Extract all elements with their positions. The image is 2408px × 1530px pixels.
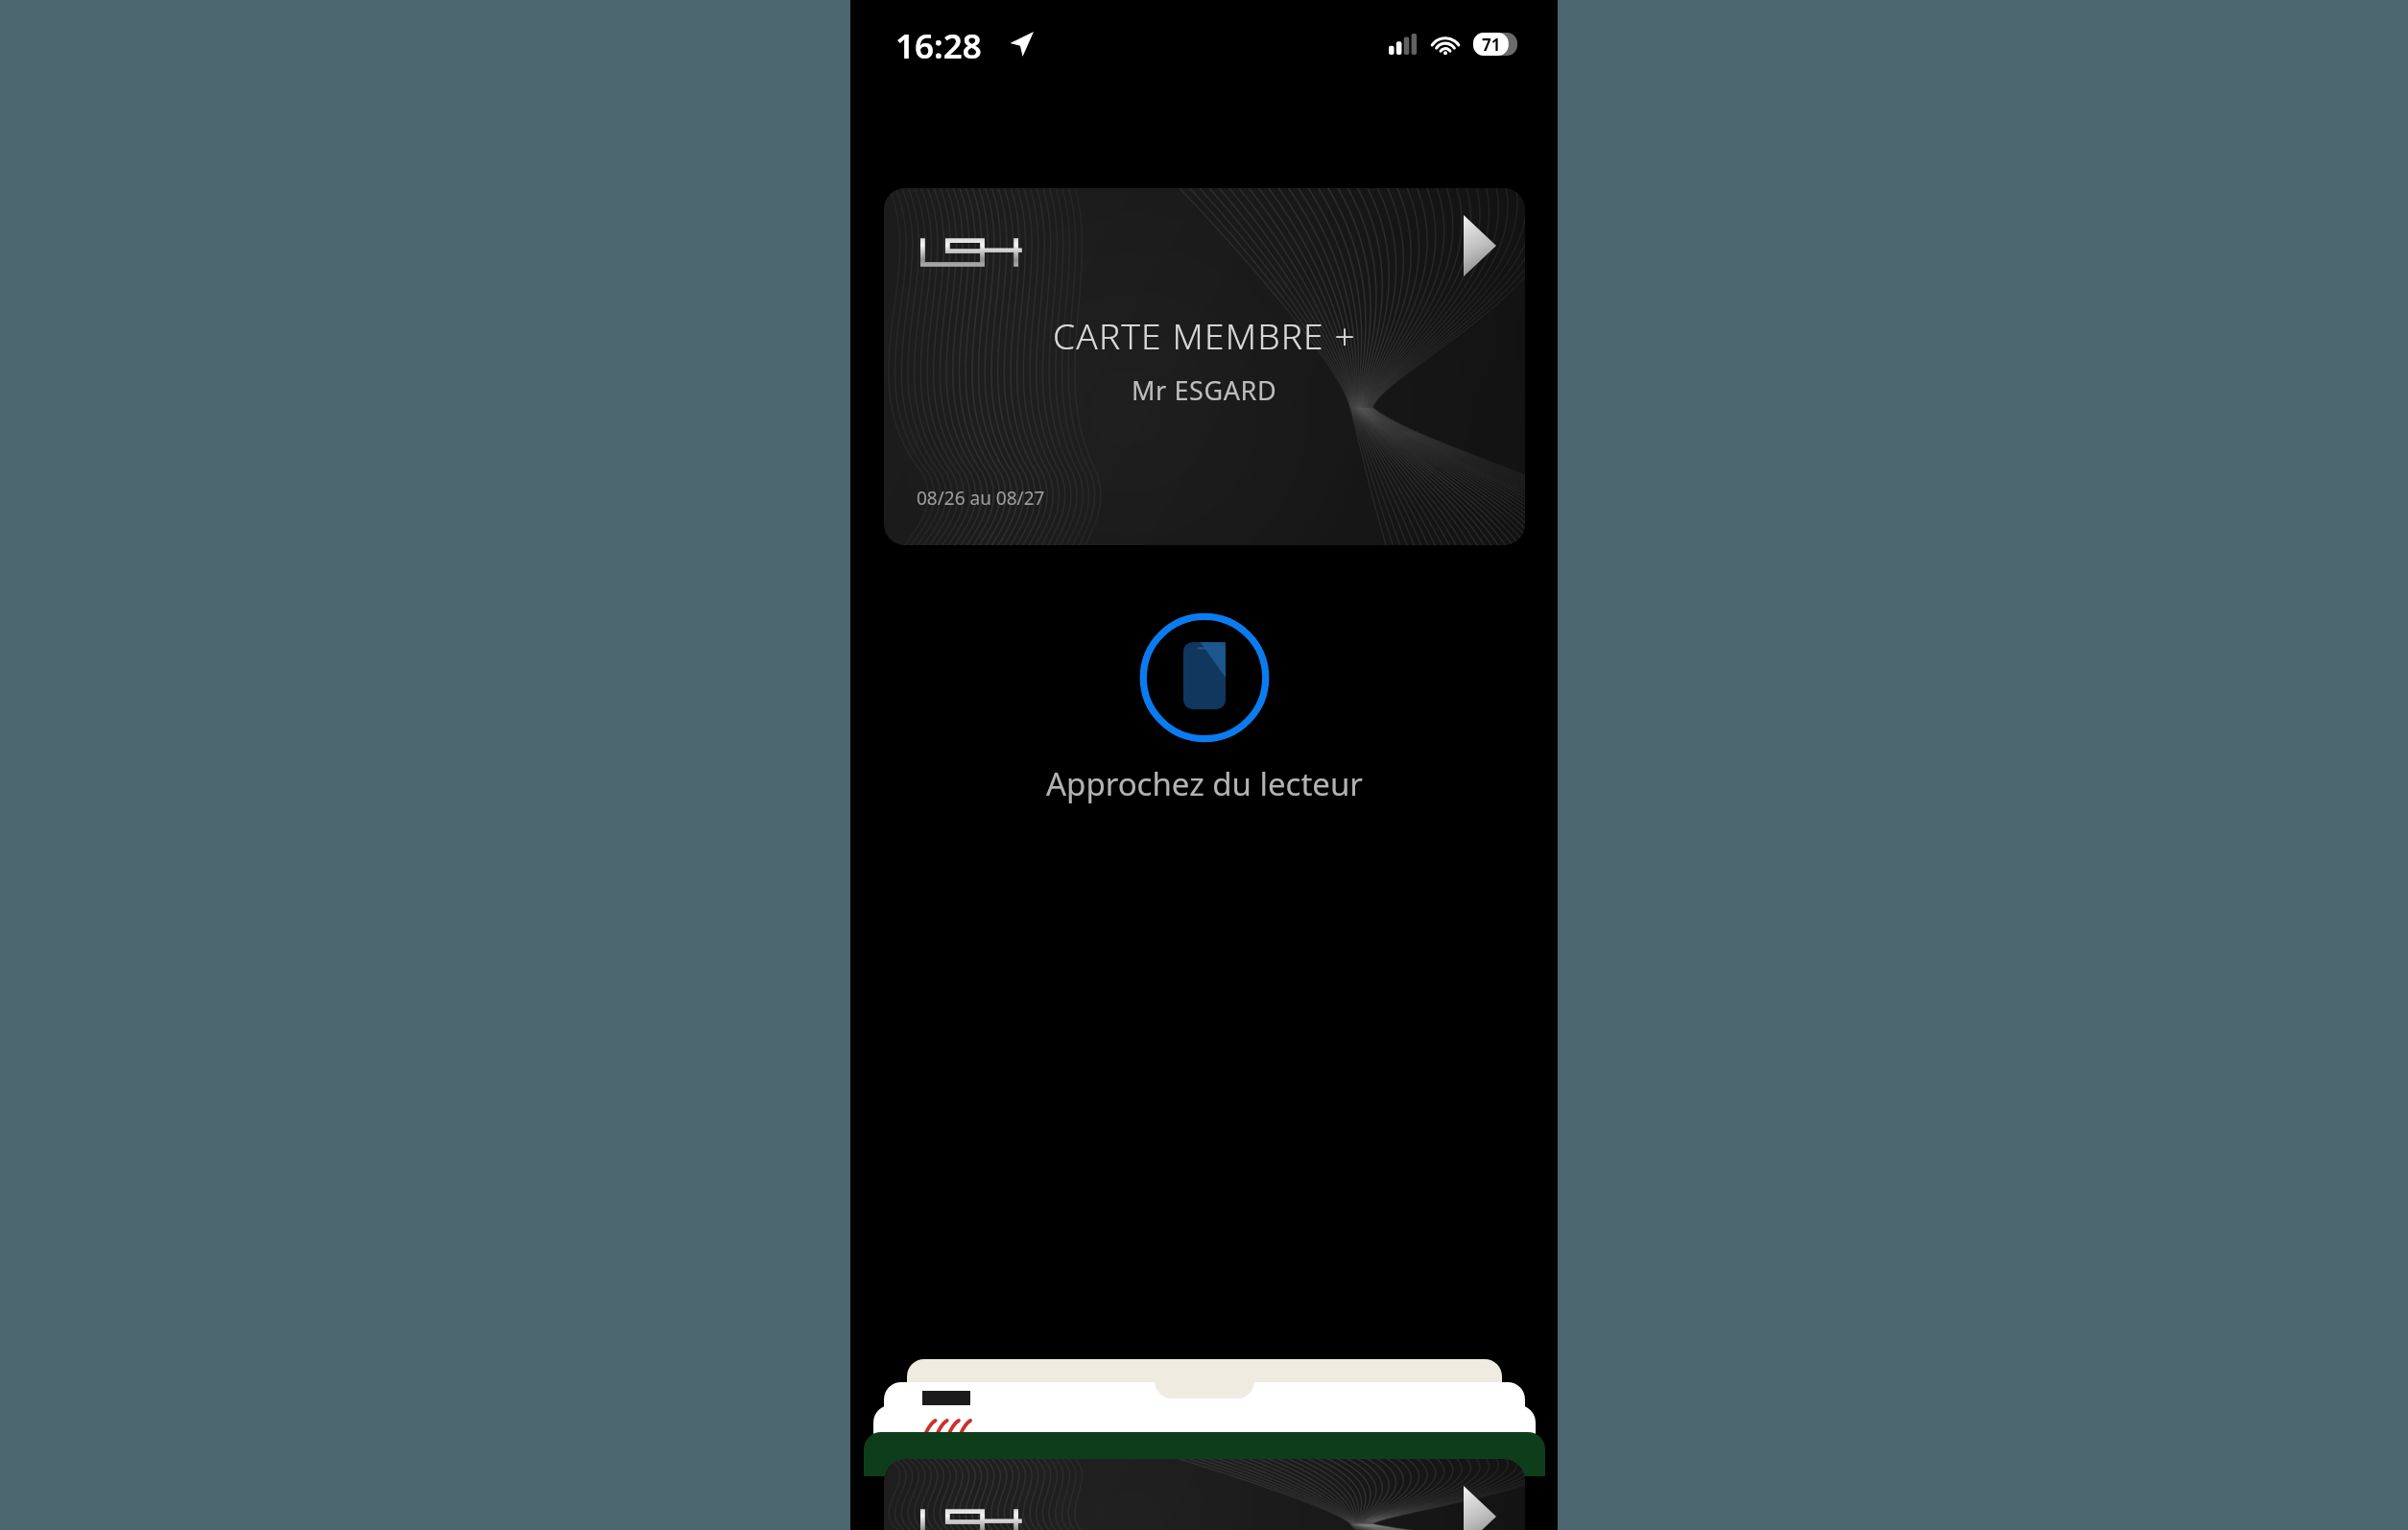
button[interactable] <box>864 1432 1545 1476</box>
staticText: 08/26 au 08/27 <box>917 486 1045 511</box>
staticText: 16:28 <box>895 23 982 69</box>
staticText: 71 <box>1482 34 1501 56</box>
button[interactable] <box>873 1405 1536 1449</box>
staticText: CARTE MEMBRE + <box>1053 311 1356 359</box>
staticText: Approchez du lecteur <box>1046 762 1363 805</box>
button[interactable] <box>907 1359 1502 1426</box>
button[interactable] <box>884 1382 1525 1440</box>
button[interactable] <box>884 1459 1525 1530</box>
button[interactable]: CARTE MEMBRE + <box>884 188 1525 545</box>
button[interactable]: Approcher du lecteur NFC <box>1137 610 1272 745</box>
staticText: Mr ESGARD <box>1132 372 1277 408</box>
